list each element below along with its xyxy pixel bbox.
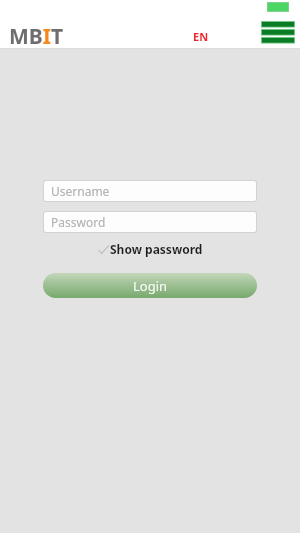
button[interactable]: Password [44, 212, 256, 232]
button[interactable]: Menu [258, 0, 298, 48]
staticText: Login [133, 277, 168, 295]
staticText: MBIT [9, 22, 64, 51]
staticText: Password [51, 214, 106, 230]
button[interactable]: MBIT [9, 22, 64, 51]
staticText: EN [193, 29, 209, 44]
button[interactable]: Show password [94, 239, 207, 259]
button[interactable]: EN [189, 27, 213, 46]
staticText: Username [51, 183, 110, 199]
button[interactable]: Username [44, 181, 256, 201]
staticText: Show password [110, 241, 203, 257]
button[interactable]: Login [43, 273, 257, 298]
